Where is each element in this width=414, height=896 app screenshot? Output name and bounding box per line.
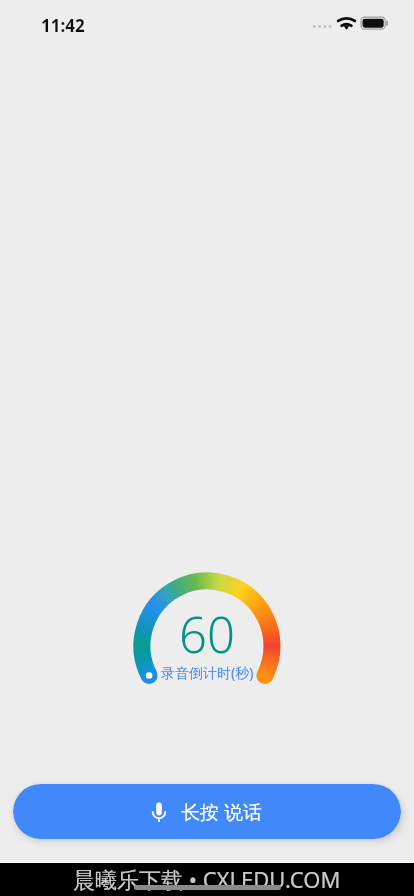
staticText: 11:42 [41, 14, 85, 37]
staticText: 长按 说话 [181, 799, 262, 825]
staticText: 晨曦乐下载 • CXLEDU.COM [73, 864, 341, 894]
button[interactable]: 长按 说话 [13, 784, 401, 839]
staticText: 60 [179, 601, 235, 668]
staticText: 录音倒计时(秒) [161, 663, 254, 682]
